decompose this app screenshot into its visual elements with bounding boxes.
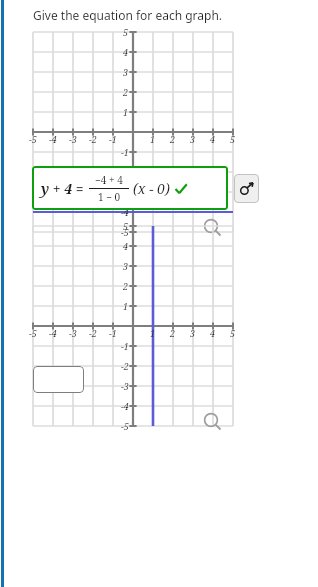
- staticText: 4: [210, 133, 216, 145]
- staticText: -4: [121, 400, 129, 412]
- staticText: 4: [123, 46, 129, 58]
- staticText: y + 4 =: [41, 179, 84, 198]
- staticText: 5: [230, 133, 236, 145]
- staticText: 1 − 0: [98, 190, 121, 204]
- staticText: Give the equation for each graph.: [33, 7, 223, 23]
- staticText: -2: [121, 166, 129, 178]
- staticText: 2: [170, 133, 176, 145]
- staticText: -1: [109, 327, 117, 339]
- staticText: 2: [123, 86, 129, 98]
- staticText: -3: [121, 380, 129, 392]
- staticText: 2: [170, 327, 176, 339]
- staticText: -1: [121, 340, 129, 352]
- button[interactable]: [33, 366, 84, 393]
- staticText: -4: [121, 206, 129, 218]
- staticText: -2: [89, 133, 97, 145]
- staticText: -5: [29, 327, 37, 339]
- staticText: -5: [121, 420, 129, 432]
- staticText: 3: [190, 327, 196, 339]
- staticText: −4 + 4: [95, 173, 123, 187]
- staticText: 1: [123, 300, 129, 312]
- staticText: -3: [121, 186, 129, 198]
- staticText: 1: [150, 327, 156, 339]
- staticText: 4: [210, 327, 216, 339]
- staticText: -4: [49, 327, 57, 339]
- staticText: 5: [123, 220, 129, 232]
- staticText: 4: [123, 240, 129, 252]
- button[interactable]: y + 4 =: [32, 166, 228, 210]
- staticText: 1: [123, 106, 129, 118]
- staticText: -2: [121, 360, 129, 372]
- staticText: -5: [121, 226, 129, 238]
- staticText: -4: [49, 133, 57, 145]
- staticText: (x − 0): [133, 179, 170, 198]
- staticText: -2: [89, 327, 97, 339]
- staticText: -3: [69, 327, 77, 339]
- staticText: 3: [190, 133, 196, 145]
- staticText: 3: [123, 66, 129, 78]
- staticText: 1: [150, 133, 156, 145]
- staticText: 5: [230, 327, 236, 339]
- staticText: -1: [121, 146, 129, 158]
- staticText: -3: [69, 133, 77, 145]
- staticText: 5: [123, 26, 129, 38]
- staticText: 2: [123, 280, 129, 292]
- staticText: 3: [123, 260, 129, 272]
- staticText: -5: [29, 133, 37, 145]
- staticText: -1: [109, 133, 117, 145]
- button[interactable]: Answer key: [234, 174, 259, 203]
